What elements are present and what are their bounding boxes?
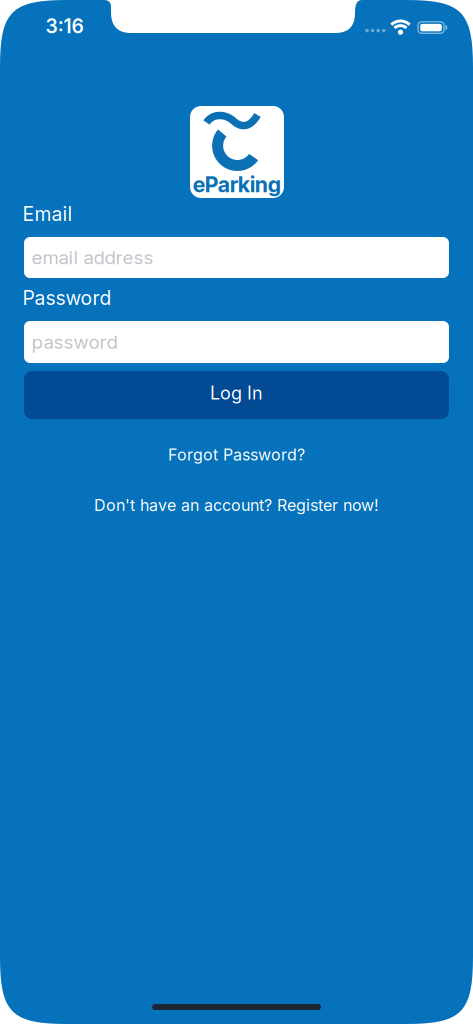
staticText: Password [22,286,111,310]
staticText: Don't have an account? Register now! [94,496,379,515]
staticText: eParking [193,172,281,197]
textField[interactable]: email address [24,237,449,278]
staticText: Email [22,202,72,226]
staticText: password [31,331,117,353]
staticText: Forgot Password? [168,445,305,464]
staticText: Log In [210,382,263,404]
secureTextField[interactable]: password [24,321,449,363]
staticText: email address [31,246,153,269]
button[interactable]: Forgot Password? [168,445,305,464]
button[interactable]: Don't have an account? Register now! [94,496,379,515]
button[interactable]: Log In [24,371,449,419]
staticText: 3:16 [45,14,83,38]
